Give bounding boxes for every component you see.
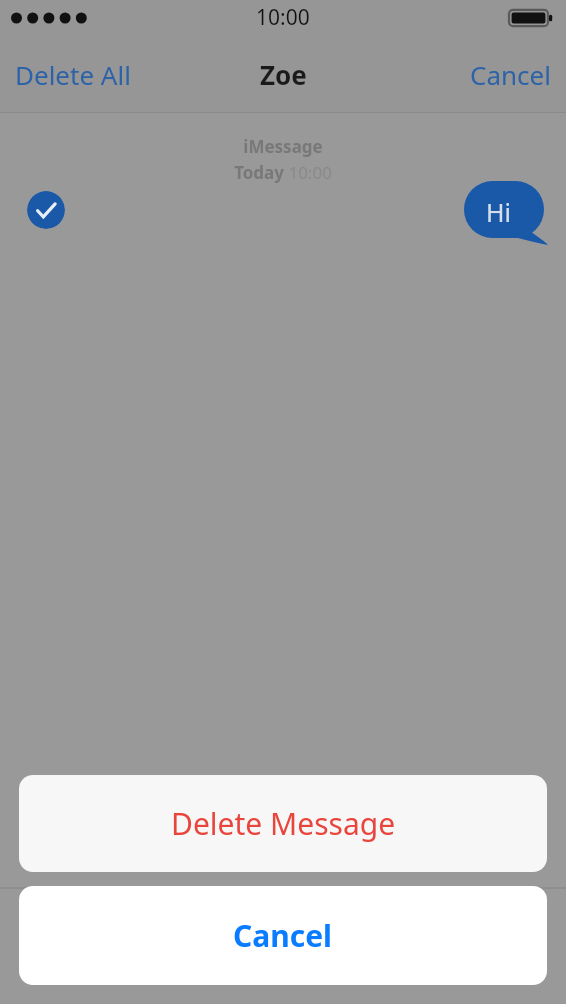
staticText: Hi [486,195,511,229]
staticText: Delete Message [171,803,396,844]
button[interactable]: Cancel [19,886,547,985]
staticText: Zoe [260,57,307,92]
staticText: iMessage [243,135,323,158]
button[interactable]: Delete Message [19,775,547,872]
staticText: Today 10:00 [234,161,332,184]
button[interactable]: Message selected [27,191,65,229]
staticText: Cancel [233,915,333,956]
button[interactable]: Hi [464,181,548,245]
staticText: 10:00 [256,3,310,32]
staticText: Cancel [470,57,551,92]
button[interactable]: Delete All [0,47,146,102]
staticText: Delete All [15,57,131,92]
button[interactable]: Cancel [455,47,566,102]
